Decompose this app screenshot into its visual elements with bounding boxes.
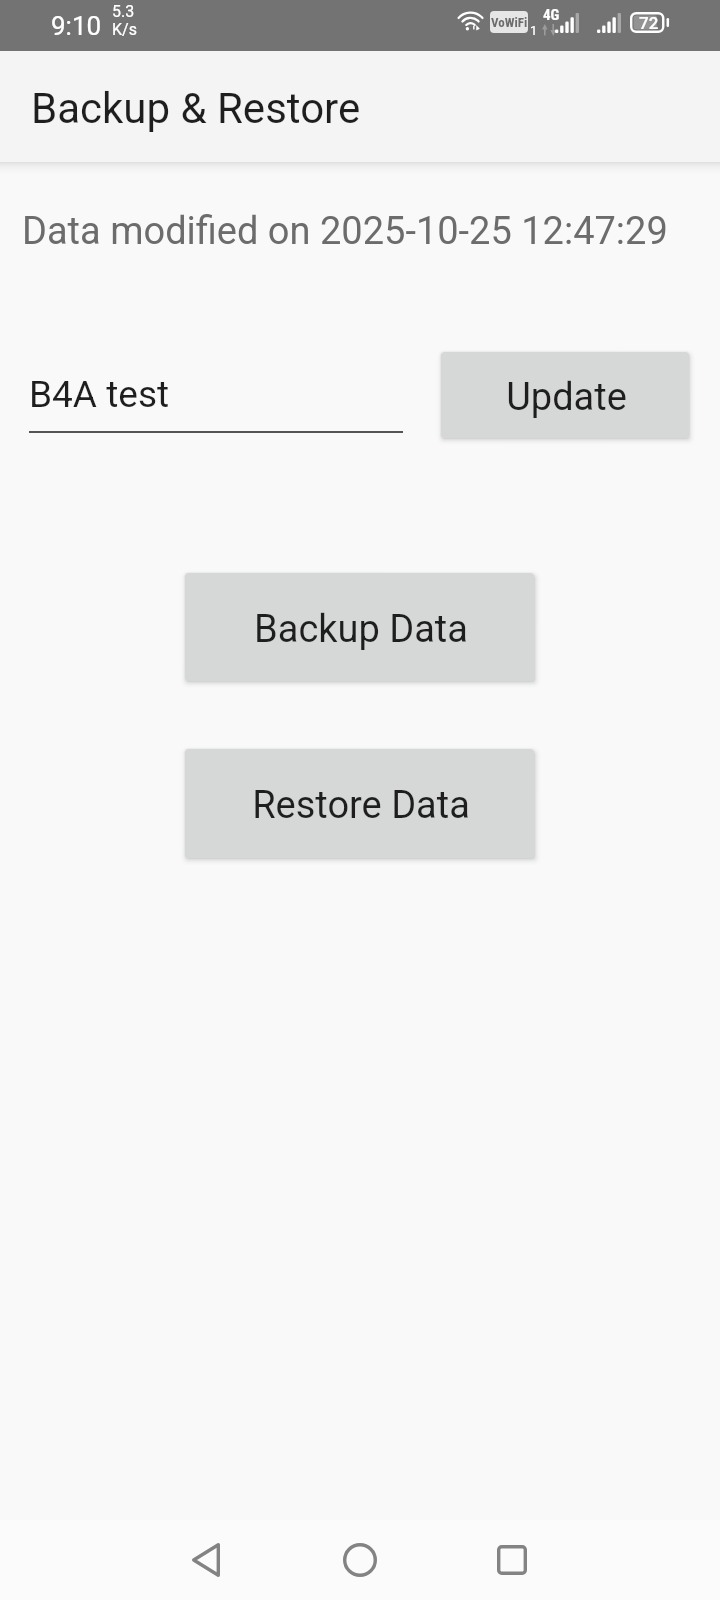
staticText: Restore Data	[252, 783, 470, 828]
button[interactable]: B4A test	[29, 365, 403, 433]
staticText: VoWiFi	[491, 15, 528, 30]
staticText: Backup Data	[254, 607, 468, 652]
button[interactable]: Backup Data	[185, 573, 534, 681]
button[interactable]: Back	[130, 1520, 282, 1600]
staticText: B4A test	[29, 373, 170, 416]
staticText: 1	[530, 23, 538, 38]
staticText: K/s	[112, 20, 137, 39]
staticText: 9:10	[51, 11, 102, 41]
staticText: 72	[639, 13, 659, 33]
button[interactable]: Update	[441, 352, 689, 438]
staticText: 4G	[543, 6, 560, 24]
staticText: Backup & Restore	[31, 84, 361, 133]
button[interactable]: Home	[284, 1520, 436, 1600]
staticText: Update	[506, 375, 627, 420]
button[interactable]: Recent apps	[436, 1520, 588, 1600]
button[interactable]: Restore Data	[185, 749, 534, 858]
staticText: Data modified on 2025-10-25 12:47:29	[22, 209, 668, 254]
staticText: 5.3	[112, 2, 135, 21]
